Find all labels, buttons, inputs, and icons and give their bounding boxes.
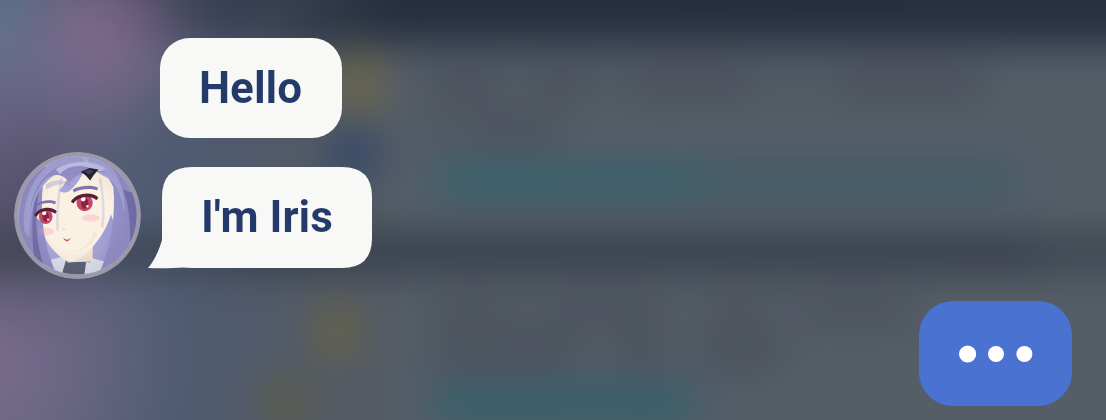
button[interactable]: I'm Iris xyxy=(148,167,372,268)
button[interactable]: Hello xyxy=(160,38,342,138)
staticText: I'm Iris xyxy=(201,191,333,243)
button[interactable]: More options xyxy=(919,301,1072,406)
staticText: Hello xyxy=(199,62,303,114)
button[interactable]: Assistant avatar xyxy=(14,152,141,279)
